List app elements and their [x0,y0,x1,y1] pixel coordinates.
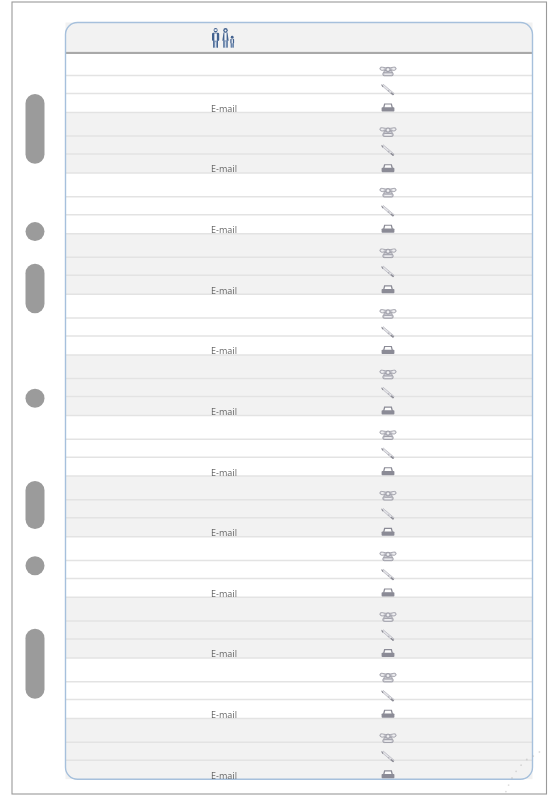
staticText: E-mail [211,587,238,599]
staticText: E-mail [211,526,238,538]
button[interactable]: E-mail [150,404,238,417]
button[interactable]: Mobile number [376,439,400,457]
button[interactable]: Fax number [376,700,400,719]
staticText: E-mail [211,162,238,174]
button[interactable]: Mobile number [376,742,400,760]
button[interactable]: Fax number [376,518,400,537]
button[interactable]: Phone number [376,416,400,440]
staticText: E-mail [211,284,238,296]
button[interactable]: Mobile number [376,560,400,578]
button[interactable]: Fax number [376,336,400,355]
button[interactable]: Mobile number [376,257,400,275]
button[interactable]: E-mail [150,222,238,235]
staticText: E-mail [211,466,238,478]
staticText: E-mail [211,405,238,417]
button[interactable]: Fax number [376,275,400,294]
button[interactable]: Mobile number [376,621,400,639]
button[interactable]: Phone number [376,719,400,743]
button[interactable]: E-mail [150,283,238,296]
button[interactable]: Phone number [376,52,400,76]
button[interactable]: Fax number [376,760,400,779]
button[interactable]: Phone number [376,537,400,561]
staticText: E-mail [211,344,238,356]
button[interactable]: E-mail [150,525,238,538]
button[interactable]: Mobile number [376,136,400,154]
button[interactable]: E-mail [150,707,238,720]
button[interactable]: Phone number [376,234,400,258]
button[interactable]: Phone number [376,476,400,500]
button[interactable]: Phone number [376,658,400,682]
button[interactable]: Mobile number [376,500,400,518]
staticText: E-mail [211,708,238,720]
button[interactable]: E-mail [150,101,238,114]
staticText: E-mail [211,647,238,659]
button[interactable]: Fax number [376,639,400,658]
button[interactable]: Fax number [376,154,400,173]
button[interactable]: Mobile number [376,379,400,397]
button[interactable]: E-mail [150,586,238,599]
button[interactable]: Phone number [376,355,400,379]
button[interactable]: Mobile number [376,318,400,336]
button[interactable]: Mobile number [376,197,400,215]
button[interactable]: Phone number [376,294,400,318]
button[interactable]: Fax number [376,578,400,597]
button[interactable]: E-mail [150,161,238,174]
button[interactable]: Fax number [376,457,400,476]
button[interactable]: Phone number [376,112,400,136]
button[interactable]: Contacts [66,23,533,51]
button[interactable]: E-mail [150,343,238,356]
staticText: E-mail [211,223,238,235]
button[interactable]: E-mail [150,465,238,478]
button[interactable]: Phone number [376,173,400,197]
button[interactable]: Fax number [376,215,400,234]
button[interactable]: Phone number [376,597,400,621]
button[interactable]: E-mail [150,646,238,659]
staticText: E-mail [211,102,238,114]
button[interactable]: Fax number [376,93,400,112]
button[interactable]: Mobile number [376,682,400,700]
button[interactable]: Fax number [376,397,400,416]
button[interactable]: Mobile number [376,75,400,93]
staticText: E-mail [211,769,238,781]
button[interactable]: E-mail [150,768,238,781]
